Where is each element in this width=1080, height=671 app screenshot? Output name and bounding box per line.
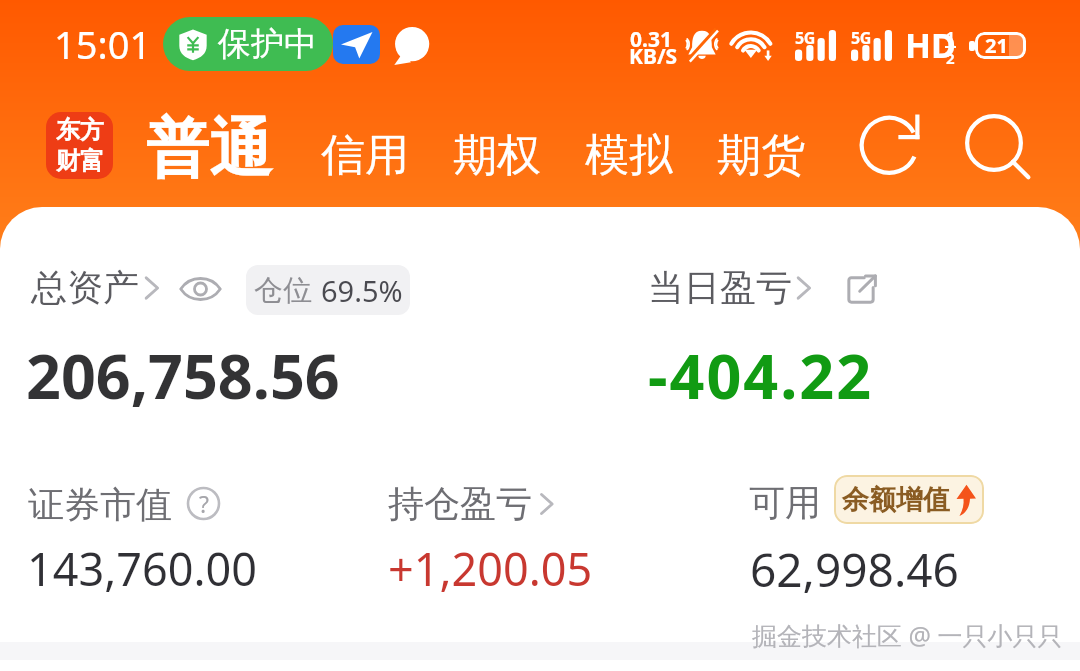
staticText: 206,758.56 xyxy=(26,334,340,417)
staticText: 69.5% xyxy=(321,271,403,310)
staticText: 2 xyxy=(946,48,955,68)
button[interactable]: Messages xyxy=(392,27,430,65)
staticText: 143,760.00 xyxy=(27,538,258,599)
staticText: 普通 xyxy=(146,109,272,188)
staticText: 持仓盈亏 xyxy=(388,481,532,526)
staticText: 模拟 xyxy=(585,128,673,183)
staticText: 东方 xyxy=(56,115,104,145)
staticText: HD xyxy=(905,22,956,68)
button[interactable]: Help xyxy=(187,487,220,520)
staticText: 15:01 xyxy=(54,18,152,70)
staticText: 62,998.46 xyxy=(750,538,959,601)
button[interactable]: Open detail xyxy=(845,274,877,306)
staticText: 可用 xyxy=(749,480,821,525)
staticText: ? xyxy=(199,488,209,519)
button[interactable]: 持仓盈亏 xyxy=(388,481,560,526)
staticText: KB/S xyxy=(629,42,678,71)
button[interactable]: 信用 xyxy=(309,119,421,191)
staticText: 0.31 xyxy=(630,25,672,54)
button[interactable]: 余额增值 xyxy=(834,475,984,524)
button[interactable]: 保护中 xyxy=(163,17,333,71)
staticText: 保护中 xyxy=(218,23,317,65)
staticText: 期权 xyxy=(453,128,541,183)
staticText: 1 xyxy=(946,26,955,46)
staticText: -404.22 xyxy=(648,334,874,417)
button[interactable]: Refresh xyxy=(858,110,926,178)
button[interactable]: 普通 xyxy=(136,102,282,188)
button[interactable]: 总资产 xyxy=(31,265,169,310)
staticText: 财富 xyxy=(56,146,104,176)
staticText: 5G xyxy=(795,27,815,49)
staticText: 5G xyxy=(851,27,871,49)
staticText: 当日盈亏 xyxy=(648,265,792,310)
staticText: 掘金技术社区 @ 一只小只只 xyxy=(752,618,1063,652)
staticText: 仓位 xyxy=(254,272,312,309)
staticText: 总资产 xyxy=(31,265,139,310)
staticText: 信用 xyxy=(321,128,409,183)
staticText: 证券市值 xyxy=(28,482,172,527)
button[interactable]: 期权 xyxy=(441,119,553,191)
button[interactable]: 当日盈亏 xyxy=(648,265,822,310)
staticText: +1,200.05 xyxy=(388,538,593,599)
button[interactable]: 东方 xyxy=(46,112,113,179)
button[interactable]: Search xyxy=(960,110,1028,178)
button[interactable]: 模拟 xyxy=(573,119,685,191)
button[interactable]: 仓位 xyxy=(246,265,410,315)
staticText: 21 xyxy=(985,32,1008,59)
button[interactable]: Toggle visibility xyxy=(179,275,222,303)
staticText: 余额增值 xyxy=(842,483,950,517)
staticText: 期货 xyxy=(717,128,805,183)
button[interactable]: Navigation xyxy=(333,25,380,64)
button[interactable]: 期货 xyxy=(705,119,817,191)
